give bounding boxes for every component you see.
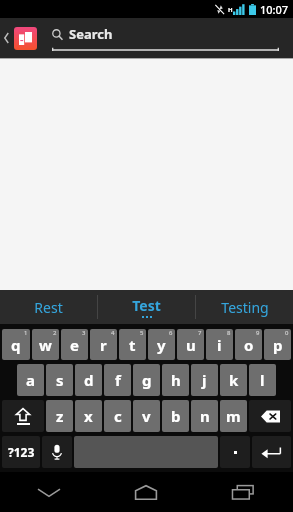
staticText: 2 (53, 329, 57, 337)
button[interactable]: Test (98, 290, 195, 324)
button[interactable]: Testing (196, 290, 293, 324)
staticText: p (273, 335, 283, 355)
button[interactable]: o (235, 329, 262, 360)
staticText: j (202, 370, 207, 390)
button[interactable]: f (104, 364, 131, 396)
staticText: o (244, 335, 254, 355)
button[interactable]: m (220, 400, 247, 432)
button[interactable]: x (75, 400, 102, 432)
button[interactable]: Recent apps (195, 472, 293, 512)
staticText: m (226, 406, 241, 426)
staticText: k (229, 370, 239, 390)
staticText: 8 (227, 329, 231, 337)
staticText: c (114, 406, 122, 426)
staticText: 5 (140, 329, 144, 337)
button[interactable]: s (46, 364, 73, 396)
staticText: w (39, 335, 52, 355)
staticText: i (217, 335, 222, 355)
button[interactable]: l (249, 364, 276, 396)
staticText: l (260, 370, 265, 390)
staticText: ?123 (8, 444, 35, 460)
staticText: a (26, 370, 35, 390)
button[interactable]: r (90, 329, 117, 360)
button[interactable]: e (61, 329, 88, 360)
staticText: b (171, 406, 181, 426)
staticText: e (70, 335, 79, 355)
staticText: Search (69, 25, 113, 43)
staticText: z (56, 406, 64, 426)
button[interactable]: Enter (252, 436, 291, 468)
staticText: y (157, 335, 166, 355)
button[interactable]: j (191, 364, 218, 396)
staticText: r (100, 335, 107, 355)
button[interactable]: t (119, 329, 146, 360)
button[interactable]: Search (52, 25, 279, 51)
staticText: s (56, 370, 64, 390)
staticText: f (115, 370, 121, 390)
button[interactable]: b (162, 400, 189, 432)
staticText: Testing (221, 298, 269, 317)
button[interactable]: Rest (0, 290, 97, 324)
staticText: Test (132, 296, 161, 315)
button[interactable]: w (32, 329, 59, 360)
staticText: d (84, 370, 94, 390)
staticText: t (129, 335, 136, 355)
button[interactable]: Voice input (42, 436, 72, 468)
button[interactable]: q (2, 329, 30, 360)
button[interactable]: c (104, 400, 131, 432)
staticText: u (186, 335, 196, 355)
staticText: v (142, 406, 151, 426)
staticText: Rest (34, 298, 63, 317)
staticText: 3 (82, 329, 86, 337)
button[interactable]: n (191, 400, 218, 432)
button[interactable]: Shift (2, 400, 44, 432)
button[interactable] (220, 436, 250, 468)
staticText: h (171, 370, 181, 390)
button[interactable]: u (177, 329, 204, 360)
button[interactable]: h (162, 364, 189, 396)
staticText: 1 (24, 329, 28, 337)
staticText: H (228, 6, 233, 14)
button[interactable]: g (133, 364, 160, 396)
staticText: 9 (256, 329, 260, 337)
button[interactable]: v (133, 400, 160, 432)
staticText: n (200, 406, 210, 426)
staticText: q (11, 335, 21, 355)
button[interactable]: Home (97, 472, 195, 512)
button[interactable]: z (46, 400, 73, 432)
button[interactable]: y (148, 329, 175, 360)
button[interactable]: d (75, 364, 102, 396)
button[interactable]: k (220, 364, 247, 396)
staticText: 4 (111, 329, 115, 337)
staticText: 7 (198, 329, 202, 337)
staticText: 6 (169, 329, 173, 337)
button[interactable]: i (206, 329, 233, 360)
button[interactable]: ?123 (2, 436, 40, 468)
button[interactable]: Navigate up (0, 18, 12, 58)
staticText: 10:07 (260, 2, 289, 17)
staticText: g (142, 370, 152, 390)
button[interactable]: Backspace (249, 400, 291, 432)
button[interactable]: Hide keyboard (0, 472, 97, 512)
button[interactable]: a (17, 364, 44, 396)
staticText: 0 (285, 329, 289, 337)
button[interactable]: App icon (12, 25, 38, 51)
staticText: x (84, 406, 93, 426)
button[interactable]: p (264, 329, 291, 360)
